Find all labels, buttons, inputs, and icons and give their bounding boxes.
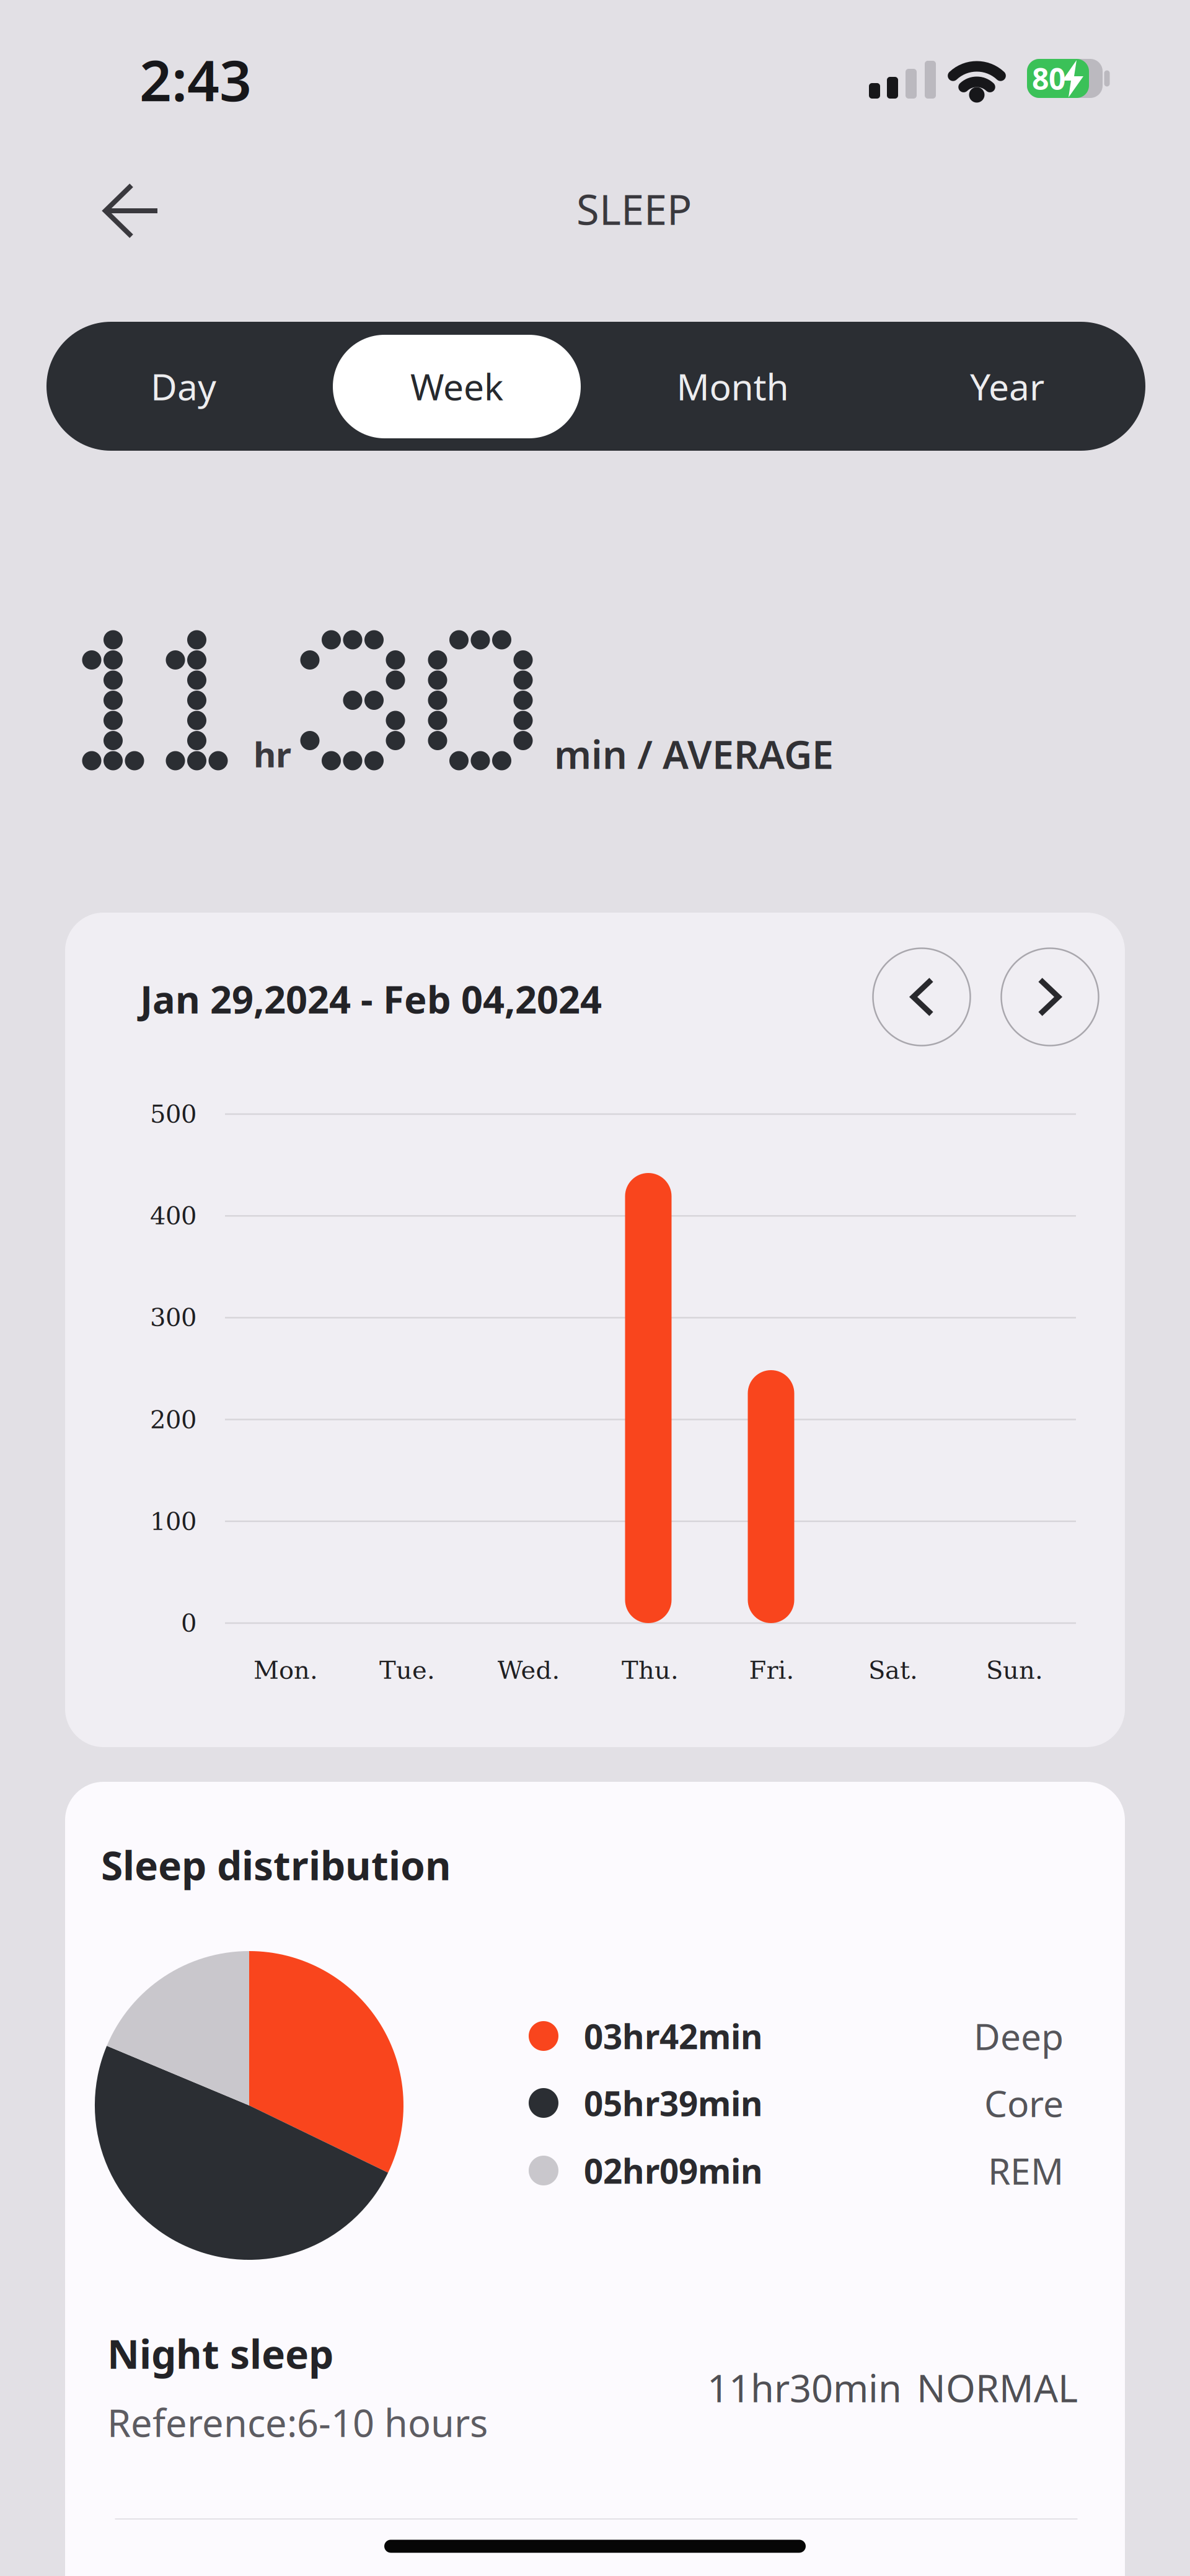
- staticText: Day: [151, 362, 216, 410]
- button[interactable]: Day: [47, 322, 320, 451]
- staticText: 2:43: [139, 42, 252, 117]
- staticText: Jan 29,2024 - Feb 04,2024: [140, 974, 602, 1024]
- staticText: Thu.: [622, 1656, 679, 1685]
- staticText: Fri.: [749, 1656, 794, 1685]
- staticText: 400: [150, 1201, 196, 1230]
- staticText: hr: [253, 731, 291, 777]
- button[interactable]: Month: [596, 322, 869, 451]
- staticText: NORMAL: [917, 2362, 1078, 2413]
- button[interactable]: Back: [87, 161, 176, 261]
- button[interactable]: Year: [871, 322, 1144, 451]
- button[interactable]: Previous week: [873, 948, 970, 1046]
- staticText: 300: [150, 1303, 196, 1332]
- staticText: 02hr09min: [584, 2148, 763, 2193]
- staticText: 80: [1032, 59, 1065, 98]
- staticText: 11hr30min: [707, 2362, 902, 2413]
- staticText: Core: [984, 2079, 1064, 2127]
- button[interactable]: Week: [320, 322, 593, 451]
- staticText: Sleep distribution: [101, 1839, 451, 1891]
- staticText: Reference:6-10 hours: [107, 2397, 488, 2447]
- staticText: min / AVERAGE: [554, 728, 834, 780]
- staticText: Sat.: [868, 1656, 918, 1685]
- staticText: 500: [150, 1100, 196, 1129]
- staticText: 200: [150, 1405, 196, 1434]
- staticText: Deep: [974, 2012, 1064, 2060]
- staticText: REM: [988, 2146, 1064, 2195]
- staticText: Tue.: [379, 1656, 435, 1685]
- staticText: Month: [677, 362, 789, 410]
- staticText: Wed.: [497, 1656, 560, 1685]
- staticText: Sun.: [986, 1656, 1043, 1685]
- staticText: SLEEP: [576, 181, 692, 236]
- staticText: Night sleep: [107, 2327, 333, 2380]
- staticText: Week: [410, 362, 503, 410]
- staticText: 100: [150, 1507, 196, 1536]
- staticText: 03hr42min: [584, 2013, 763, 2059]
- staticText: 05hr39min: [584, 2080, 763, 2125]
- staticText: Year: [970, 362, 1044, 410]
- staticText: Mon.: [253, 1656, 318, 1685]
- staticText: 0: [181, 1609, 196, 1638]
- button[interactable]: Next week: [1001, 948, 1099, 1046]
